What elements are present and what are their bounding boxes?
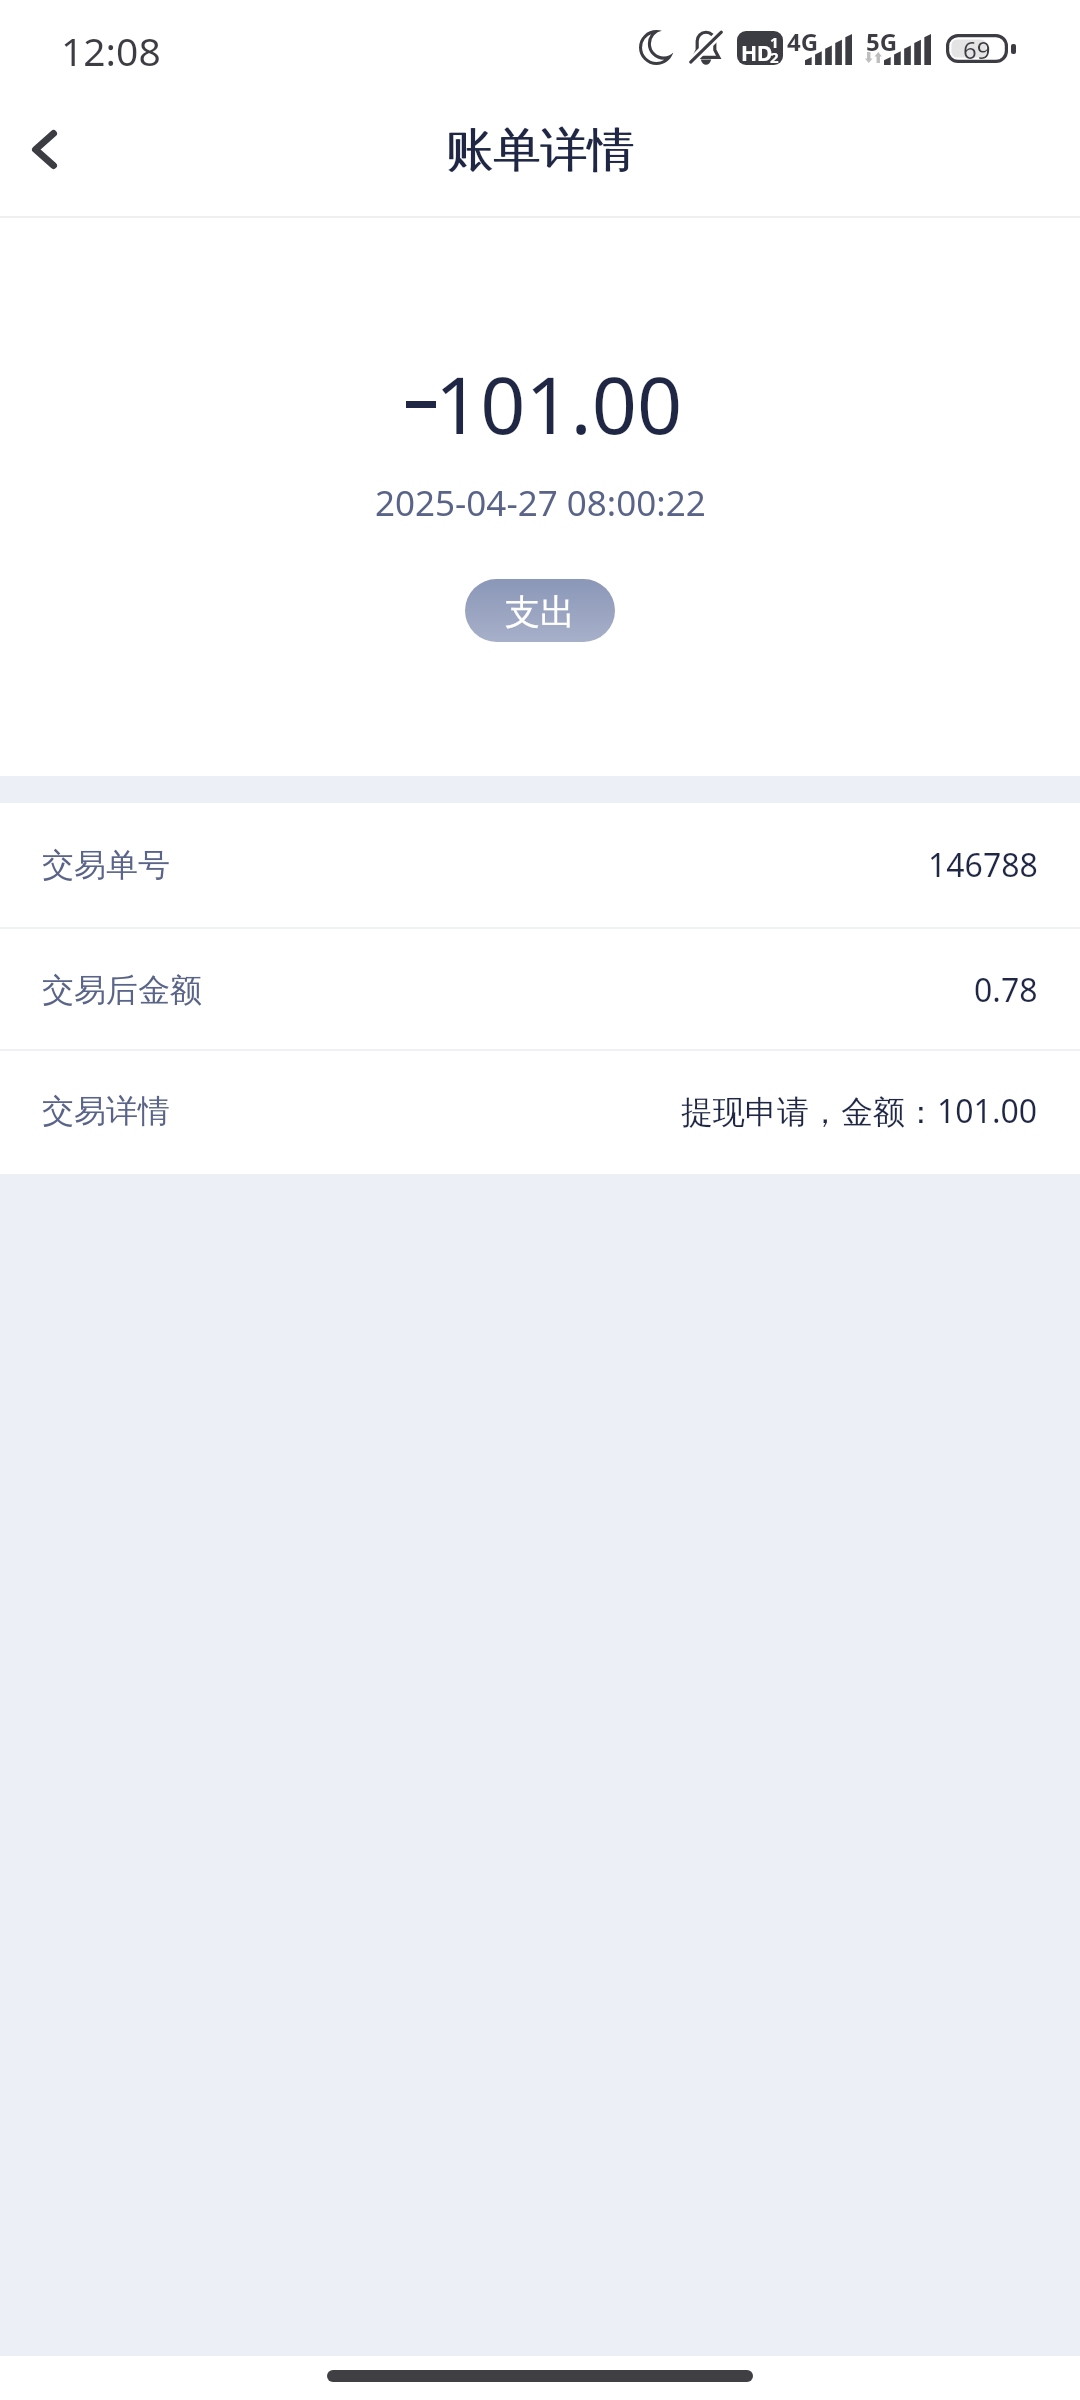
staticText: HD — [741, 39, 773, 65]
staticText: 0.78 — [974, 968, 1038, 1012]
staticText: 4G — [787, 25, 819, 58]
staticText: 提现申请，金额：101.00 — [681, 1089, 1038, 1133]
staticText: 12:08 — [61, 24, 161, 77]
button[interactable]: 交易后金额 — [0, 929, 1080, 1049]
staticText: 101.00 — [435, 350, 683, 458]
staticText: 69 — [963, 33, 991, 62]
button[interactable]: 支出 — [465, 579, 615, 642]
staticText: 1 — [770, 32, 779, 52]
button[interactable]: 交易单号 — [0, 803, 1080, 927]
staticText: 2025-04-27 08:00:22 — [375, 479, 706, 527]
button[interactable]: 交易详情 — [0, 1051, 1080, 1174]
staticText: 账单详情 — [447, 121, 635, 180]
staticText: 2 — [770, 47, 779, 65]
staticText: 账单详情 — [446, 121, 634, 180]
staticText: 5G — [866, 25, 898, 58]
staticText: 146788 — [928, 843, 1038, 887]
staticText: 交易单号 — [42, 845, 170, 885]
button[interactable]: Back — [0, 101, 92, 197]
staticText: 支出 — [505, 590, 575, 634]
staticText: 交易后金额 — [42, 970, 202, 1010]
staticText: 交易详情 — [42, 1091, 170, 1131]
